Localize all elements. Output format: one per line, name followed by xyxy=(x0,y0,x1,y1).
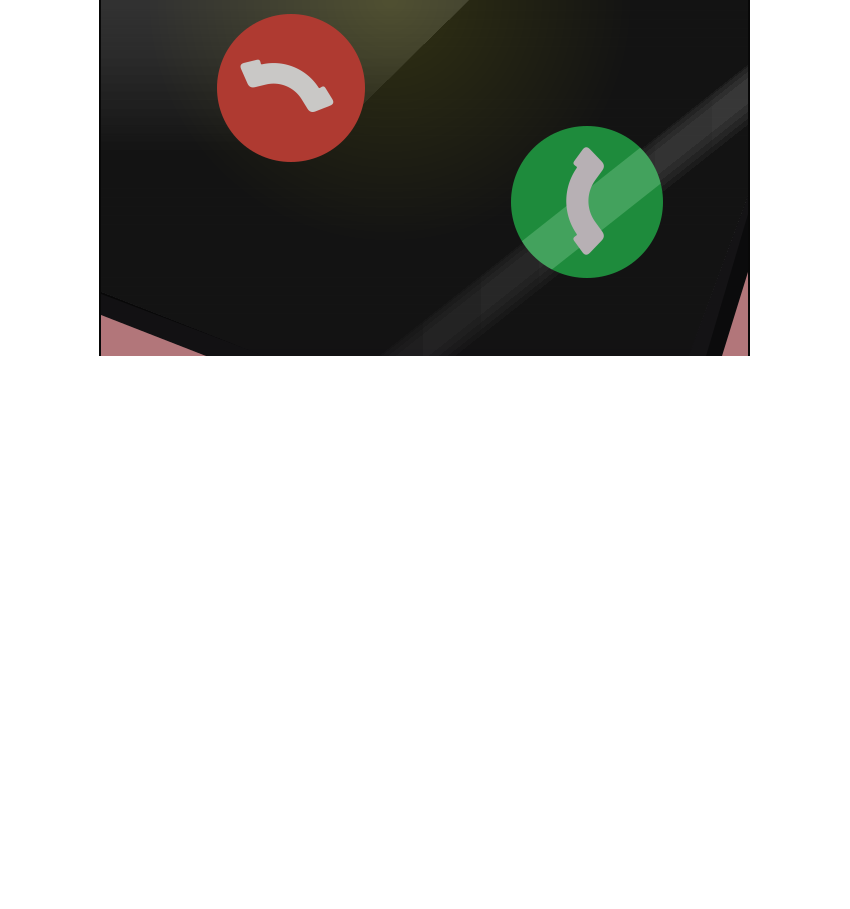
button[interactable]: Decline call xyxy=(0,0,850,909)
button[interactable]: Accept call xyxy=(0,0,850,909)
